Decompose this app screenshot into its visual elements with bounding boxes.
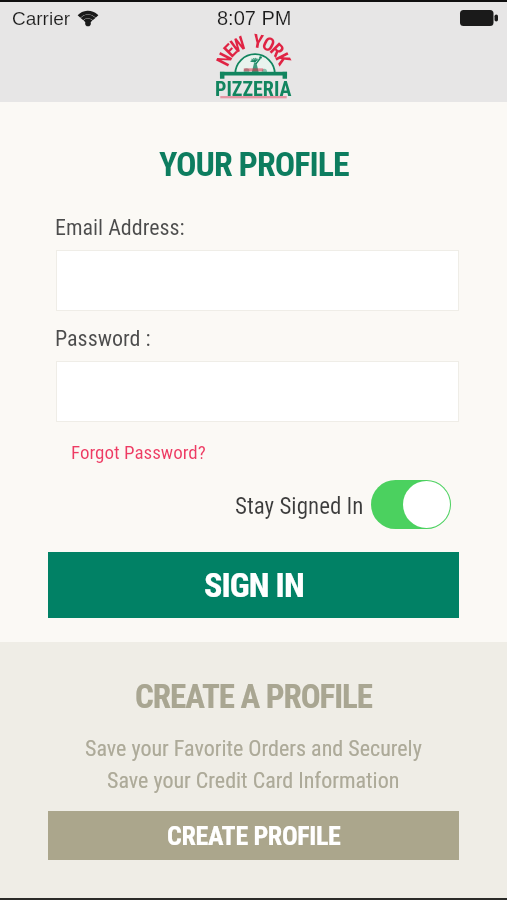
staticText: CREATE A PROFILE xyxy=(135,677,372,716)
staticText: K xyxy=(271,49,296,69)
staticText xyxy=(244,30,253,52)
other: Wi-Fi signal xyxy=(76,8,100,26)
button[interactable]: Password field xyxy=(56,361,459,422)
button[interactable]: CREATE PROFILE xyxy=(48,811,459,860)
staticText: Save your Favorite Orders and Securely xyxy=(85,736,422,762)
staticText: CREATE PROFILE xyxy=(167,821,341,851)
staticText: R xyxy=(266,38,289,62)
button[interactable]: SIGN IN xyxy=(48,552,459,618)
staticText: Stay Signed In xyxy=(235,493,364,520)
other: Battery full xyxy=(460,10,498,26)
staticText: Email Address: xyxy=(55,215,185,241)
button[interactable]: Email Address field xyxy=(56,250,459,311)
button[interactable]: Forgot Password? xyxy=(71,441,206,463)
staticText: W xyxy=(227,31,250,57)
staticText: Y xyxy=(251,29,266,53)
staticText: Password : xyxy=(55,326,151,352)
staticText: PIZZERIA xyxy=(215,77,292,100)
staticText: SIGN IN xyxy=(204,565,304,605)
staticText: O xyxy=(259,31,279,57)
button[interactable]: Stay Signed In toggle xyxy=(371,480,451,529)
staticText: Save your Credit Card Information xyxy=(107,768,400,794)
staticText: YOUR PROFILE xyxy=(159,144,349,184)
staticText: Carrier xyxy=(12,8,71,29)
staticText: E xyxy=(219,39,241,61)
staticText: 8:07 PM xyxy=(217,7,292,29)
staticText: N xyxy=(211,49,237,69)
